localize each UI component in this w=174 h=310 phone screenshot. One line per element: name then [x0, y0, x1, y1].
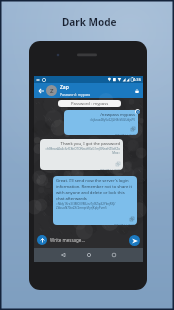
staticText: Password : mypass [71, 101, 109, 107]
button[interactable]: Home [84, 250, 94, 260]
button[interactable]: Back [58, 250, 68, 260]
button[interactable]: Back [36, 86, 45, 95]
staticText: Password: mypass [60, 92, 91, 97]
staticText: Great. I'll send now the server's login … [56, 178, 134, 202]
button[interactable]: Send [129, 235, 140, 246]
button[interactable]: Recents [109, 250, 119, 260]
staticText: 4:36 [133, 77, 141, 82]
staticText: 2021-08-11 16:04 [56, 222, 134, 225]
staticText: Dark Mode [62, 15, 117, 29]
staticText: Zap [60, 84, 69, 91]
staticText: /newpass mypass [67, 112, 135, 118]
staticText: Write message... [50, 237, 85, 243]
button[interactable]: Message info [135, 109, 140, 114]
staticText: 2021-08-11 15:34 [67, 132, 135, 135]
staticText: 2021-08-11 15:55 [43, 167, 120, 170]
button[interactable]: Lock chat [133, 87, 141, 95]
staticText: =Nbly1Xrs3/3MO/VMLirzTy9lZip32YknjRXJ/Zb… [56, 202, 134, 210]
button[interactable]: Write message... [50, 237, 126, 243]
button[interactable]: Attach [37, 235, 47, 245]
staticText: =kjkzus48yVv22JLH8/d5GUdjsPV [67, 118, 135, 122]
staticText: Thank you, I got the password [43, 141, 120, 147]
staticText: =h98narAIx4cSzfC8nO7ONsstHXsG1mJ3NneHZSe… [43, 147, 120, 155]
staticText: Z [50, 87, 54, 95]
